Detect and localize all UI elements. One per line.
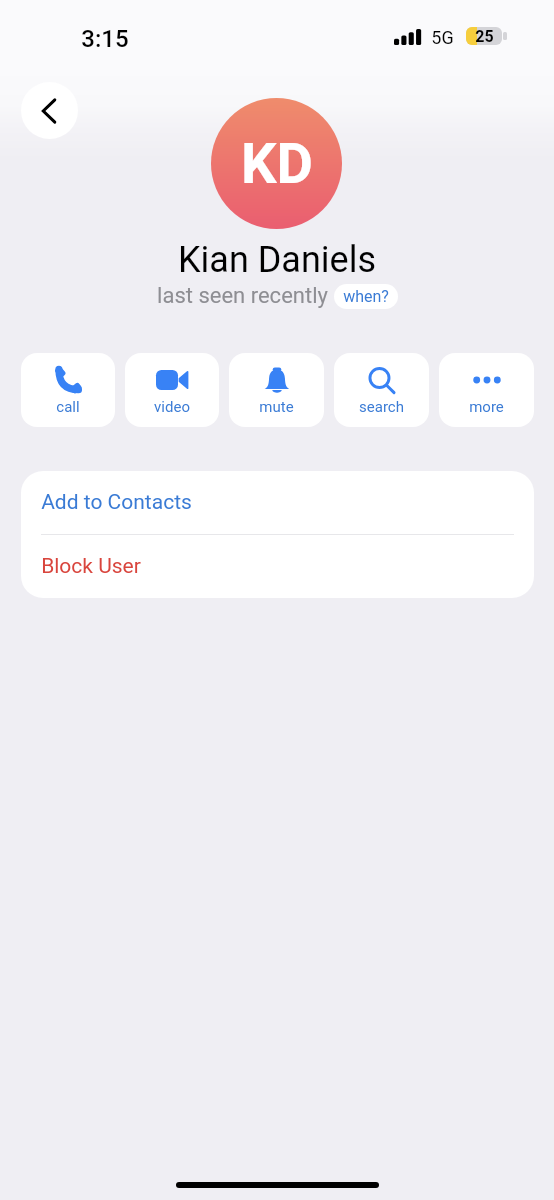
button[interactable]: when? [334,284,398,309]
staticText: mute [259,398,294,416]
staticText: KD [241,131,313,197]
staticText: 25 [475,27,494,45]
staticText: when? [343,287,389,306]
staticText: Block User [41,554,141,579]
button[interactable]: Back [21,82,78,139]
staticText: video [154,398,190,416]
staticText: Add to Contacts [41,490,192,515]
staticText: 5G [431,27,454,48]
button[interactable]: search [334,353,429,427]
staticText: 3:15 [81,25,129,53]
button[interactable]: call [21,353,115,427]
staticText: search [359,398,404,416]
button[interactable]: more [439,353,534,427]
button[interactable]: Add to Contacts [21,471,534,534]
staticText: call [56,398,80,416]
button[interactable]: Block User [21,535,534,598]
staticText: Kian Daniels [178,239,376,281]
staticText: more [469,398,504,416]
button[interactable]: mute [229,353,324,427]
staticText: last seen recently [157,283,328,309]
button[interactable]: video [125,353,219,427]
